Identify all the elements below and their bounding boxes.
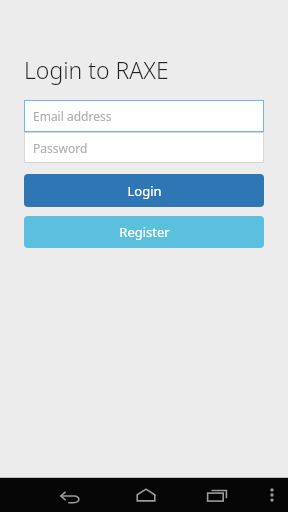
staticText: Login	[127, 182, 162, 200]
staticText: Email address	[33, 108, 112, 124]
button[interactable]: Back	[46, 478, 94, 512]
button[interactable]: Email address	[24, 100, 264, 132]
staticText: Login to RAXE	[24, 54, 169, 85]
button[interactable]: Recent apps	[193, 478, 241, 512]
button[interactable]: Register	[24, 216, 264, 248]
button[interactable]: Login	[24, 174, 264, 207]
button[interactable]: Password	[24, 132, 264, 163]
button[interactable]: Home	[122, 478, 170, 512]
staticText: Register	[119, 223, 170, 241]
staticText: Password	[33, 140, 88, 156]
button[interactable]: More options	[256, 478, 288, 512]
